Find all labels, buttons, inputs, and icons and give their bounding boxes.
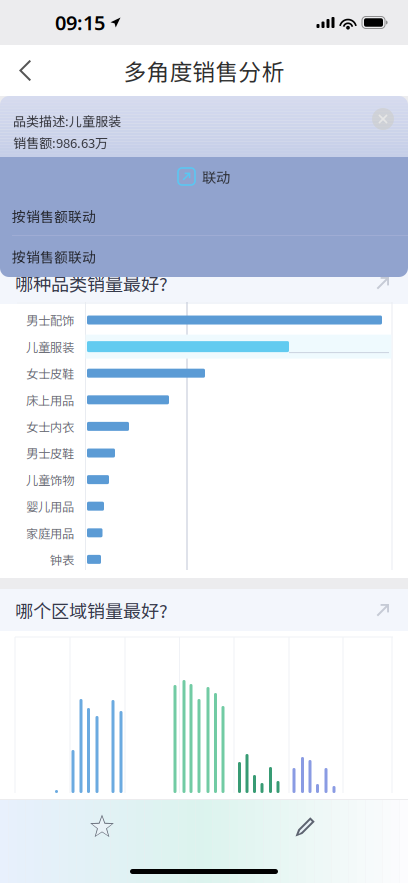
button[interactable]: 按销售额联动 <box>0 196 408 236</box>
button[interactable]: Favorite <box>0 800 204 852</box>
button[interactable]: Back <box>0 46 47 94</box>
staticText: 女士皮鞋 <box>26 364 74 382</box>
staticText: 儿童服装 <box>26 338 74 355</box>
staticText: 09:15 <box>55 9 105 36</box>
button[interactable]: Edit <box>204 800 408 852</box>
staticText: 哪种品类销量最好? <box>15 270 168 296</box>
staticText: 哪个区域销量最好? <box>15 597 168 623</box>
staticText: 女士内衣 <box>26 417 74 435</box>
staticText: 家庭用品 <box>26 524 74 542</box>
staticText: 男士配饰 <box>26 311 74 329</box>
button[interactable]: Expand chart <box>370 597 396 623</box>
staticText: 品类描述:儿童服装 <box>13 111 121 130</box>
staticText: 按销售额联动 <box>12 247 96 266</box>
staticText: 联动 <box>202 166 230 187</box>
staticText: 儿童饰物 <box>26 471 74 488</box>
staticText: 销售额:986.63万 <box>13 133 108 152</box>
staticText: 多角度销售分析 <box>123 54 284 87</box>
button[interactable]: Close <box>372 108 394 130</box>
button[interactable]: Expand chart <box>370 270 396 296</box>
button[interactable]: 按销售额联动 <box>0 236 408 277</box>
staticText: 按销售额联动 <box>12 206 96 226</box>
staticText: 男士皮鞋 <box>26 444 74 462</box>
staticText: 婴儿用品 <box>26 497 74 515</box>
staticText: 床上用品 <box>26 391 74 409</box>
staticText: 钟表 <box>50 550 74 568</box>
